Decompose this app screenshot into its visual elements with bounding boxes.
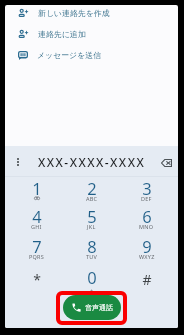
button[interactable]: メッセージを送信 [5, 44, 178, 65]
staticText: * [33, 270, 41, 289]
button[interactable]: Backspace [158, 153, 174, 169]
staticText: 7 [32, 235, 42, 257]
staticText: 連絡先に追加 [38, 29, 86, 39]
button[interactable]: 0 [64, 265, 119, 293]
staticText: 9 [142, 235, 152, 257]
staticText: MNO [139, 223, 154, 230]
staticText: 1 [32, 177, 42, 199]
button[interactable]: More options [10, 153, 26, 169]
staticText: JKL [87, 223, 96, 230]
staticText: PQRS [29, 253, 45, 260]
staticText: 4 [32, 205, 42, 227]
button[interactable]: 7 [9, 234, 64, 262]
button[interactable]: 連絡先に追加 [5, 23, 178, 44]
staticText: 5 [87, 205, 97, 227]
staticText: 8 [87, 235, 97, 257]
staticText: 音声通話 [85, 303, 113, 312]
staticText: # [142, 270, 152, 289]
staticText: 0 [87, 266, 97, 288]
staticText: DEF [141, 195, 152, 202]
button[interactable]: 4 [9, 204, 64, 232]
button[interactable]: 1 [9, 176, 64, 204]
button[interactable]: 音声通話 [63, 295, 121, 320]
staticText: 新しい連絡先を作成 [38, 8, 110, 18]
button[interactable]: 2 [64, 176, 119, 204]
button[interactable]: * [9, 265, 64, 293]
button[interactable]: 3 [119, 176, 174, 204]
button[interactable]: 新しい連絡先を作成 [5, 5, 178, 23]
button[interactable]: 5 [64, 204, 119, 232]
staticText: GHI [31, 223, 42, 230]
staticText: ABC [86, 195, 98, 202]
button[interactable]: 9 [119, 234, 174, 262]
staticText: TUV [86, 253, 98, 260]
button[interactable]: 8 [64, 234, 119, 262]
staticText: XXX-XXXX-XXXX [38, 154, 146, 170]
button[interactable]: # [119, 265, 174, 293]
staticText: 3 [142, 177, 152, 199]
button[interactable]: 6 [119, 204, 174, 232]
staticText: メッセージを送信 [37, 50, 102, 60]
staticText: 2 [87, 177, 97, 199]
staticText: + [90, 287, 94, 294]
staticText: 6 [142, 205, 152, 227]
staticText: WXYZ [139, 253, 155, 260]
